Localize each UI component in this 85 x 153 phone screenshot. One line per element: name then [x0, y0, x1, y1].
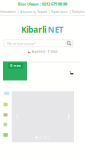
button[interactable]: Sonraki [66, 112, 71, 121]
staticText: Hesabım | Alışveriş Sepeti | Siparişim |… [0, 9, 85, 14]
staticText: MENU [13, 64, 21, 67]
staticText: Sepetiniz : 0 Ürün [32, 50, 58, 53]
button[interactable]: MENU [8, 63, 23, 68]
staticText: NET [48, 24, 64, 35]
button[interactable]: Ara [65, 40, 73, 47]
staticText: Kibarli [21, 24, 46, 35]
button[interactable]: Sepetiniz : 0 Ürün [0, 49, 85, 54]
staticText: Ne arıyorsunuz? [7, 41, 36, 46]
staticText: Bize Ulaşın : 0212 679 88 88 [18, 1, 67, 6]
button[interactable]: Sepet [68, 70, 74, 75]
